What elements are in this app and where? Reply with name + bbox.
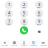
- button[interactable]: Delete: [35, 26, 43, 34]
- button[interactable]: Contacts: [19, 40, 29, 48]
- button[interactable]: Voicemail: [38, 40, 48, 48]
- button[interactable]: 2: [20, 1, 28, 9]
- staticText: DEF: [38, 6, 41, 8]
- staticText: 6: [38, 10, 40, 15]
- staticText: 4: [8, 10, 10, 15]
- button[interactable]: Keypad: [29, 40, 38, 48]
- button[interactable]: 7: [5, 18, 13, 26]
- staticText: 5: [23, 10, 25, 15]
- button[interactable]: Recents: [10, 40, 19, 48]
- staticText: Recents: [11, 45, 17, 46]
- staticText: JKL: [23, 15, 25, 17]
- staticText: ABC: [22, 6, 25, 8]
- button[interactable]: 4: [5, 9, 13, 17]
- button[interactable]: 1: [5, 1, 13, 9]
- staticText: Contacts: [21, 45, 27, 46]
- staticText: 2: [23, 2, 25, 7]
- button[interactable]: 9: [35, 18, 43, 26]
- staticText: 8: [23, 19, 25, 24]
- button[interactable]: Call: [20, 26, 28, 34]
- staticText: 1: [8, 2, 10, 7]
- button[interactable]: 5: [20, 9, 28, 17]
- button[interactable]: Favorites: [0, 40, 10, 48]
- staticText: MNO: [38, 15, 41, 17]
- staticText: PQRS: [7, 23, 11, 25]
- staticText: Voicemail: [40, 45, 46, 46]
- staticText: 3: [38, 2, 40, 7]
- staticText: 7: [8, 19, 10, 24]
- staticText: Keypad: [31, 45, 37, 46]
- staticText: WXYZ: [37, 23, 41, 25]
- staticText: Favorites: [1, 45, 8, 46]
- staticText: 9: [38, 19, 40, 24]
- button[interactable]: 8: [20, 18, 28, 26]
- staticText: GHI: [8, 15, 10, 17]
- staticText: TUV: [22, 23, 25, 25]
- button[interactable]: 3: [35, 1, 43, 9]
- button[interactable]: 6: [35, 9, 43, 17]
